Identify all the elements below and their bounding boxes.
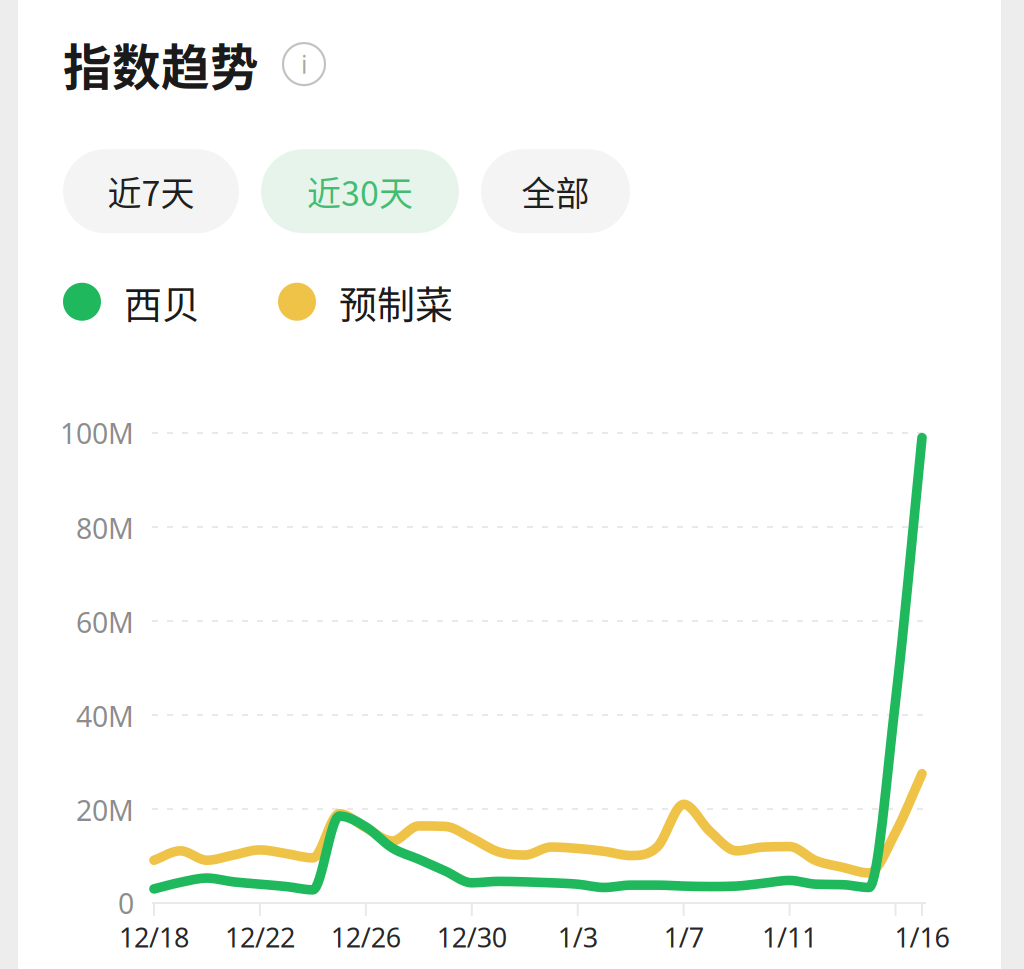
staticText: 0 — [118, 884, 134, 922]
staticText: 1/11 — [762, 919, 817, 955]
staticText: 12/26 — [331, 919, 401, 955]
button[interactable]: 全部 — [481, 149, 630, 233]
button[interactable]: 近30天 — [261, 149, 459, 233]
button[interactable]: 近7天 — [63, 149, 239, 233]
staticText: 12/22 — [225, 919, 295, 955]
staticText: i — [301, 47, 307, 81]
staticText: 20M — [76, 791, 134, 829]
staticText: 全部 — [521, 167, 589, 216]
staticText: 预制菜 — [339, 274, 453, 329]
staticText: 80M — [76, 509, 134, 547]
staticText: 12/30 — [437, 919, 507, 955]
staticText: 60M — [76, 603, 134, 641]
staticText: 100M — [60, 414, 134, 452]
staticText: 近7天 — [107, 167, 194, 216]
staticText: 近30天 — [307, 167, 413, 216]
button[interactable]: About index trend — [283, 43, 325, 85]
staticText: 指数趋势 — [63, 29, 259, 99]
staticText: 40M — [76, 697, 134, 735]
staticText: 12/18 — [119, 919, 189, 955]
staticText: 1/16 — [894, 919, 949, 955]
staticText: 1/7 — [664, 919, 704, 955]
staticText: 1/3 — [558, 919, 598, 955]
staticText: 西贝 — [124, 274, 200, 329]
